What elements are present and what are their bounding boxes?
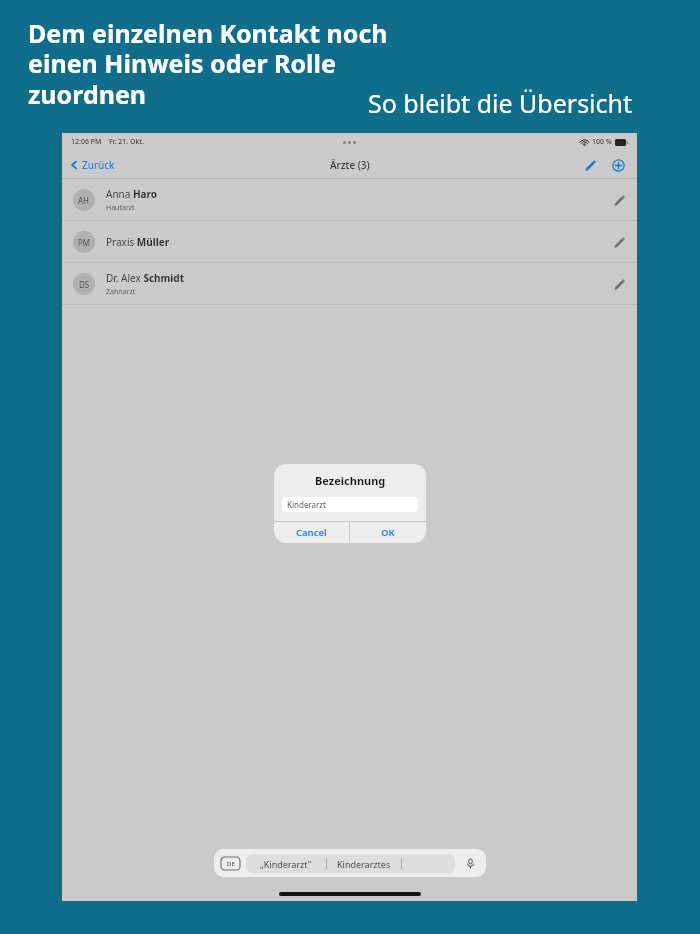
staticText: So bleibt die Übersicht bbox=[368, 86, 633, 120]
staticText: Fr. 21. Okt. bbox=[109, 137, 144, 147]
button[interactable]: Bearbeiten bbox=[580, 155, 600, 175]
staticText: AH bbox=[78, 195, 90, 206]
staticText: 100 % bbox=[592, 137, 612, 147]
button[interactable]: „Kinderarzt" bbox=[246, 854, 326, 873]
button[interactable]: Tastatursprache DE bbox=[221, 857, 240, 870]
button[interactable]: Kontakt bearbeiten bbox=[606, 271, 632, 297]
button[interactable]: Diktat bbox=[461, 854, 479, 872]
button[interactable]: OK bbox=[350, 522, 426, 543]
staticText: 12:06 PM bbox=[71, 137, 102, 147]
staticText: Zahnarzt bbox=[106, 287, 136, 297]
staticText: OK bbox=[381, 526, 395, 539]
staticText: Bezeichnung bbox=[315, 473, 386, 488]
button[interactable]: Kontakt bearbeiten bbox=[606, 229, 632, 255]
staticText: Dem einzelnen Kontakt noch einen Hinweis… bbox=[28, 16, 388, 112]
staticText: Kinderarzt bbox=[287, 499, 326, 510]
staticText: Dr. Alex Schmidt bbox=[106, 271, 184, 285]
staticText: PM bbox=[78, 237, 91, 248]
button[interactable]: Zurück bbox=[67, 155, 117, 175]
staticText: Hautarzt bbox=[106, 203, 135, 213]
button[interactable]: Kinderarzt bbox=[282, 497, 418, 512]
staticText: „Kinderarzt" bbox=[260, 858, 312, 870]
button[interactable]: Cancel bbox=[274, 522, 349, 543]
button[interactable]: AH bbox=[62, 179, 637, 220]
button[interactable]: DS bbox=[62, 263, 637, 304]
button[interactable]: PM bbox=[62, 221, 637, 262]
staticText: DE bbox=[227, 860, 235, 868]
button[interactable]: Kontakt hinzufügen bbox=[608, 155, 628, 175]
button[interactable]: Kinderarztes bbox=[327, 854, 401, 873]
staticText: Kinderarztes bbox=[337, 858, 391, 870]
staticText: DS bbox=[79, 279, 90, 290]
staticText: Ärzte (3) bbox=[330, 158, 370, 172]
staticText: Cancel bbox=[296, 526, 327, 539]
staticText: Zurück bbox=[82, 158, 115, 172]
button[interactable]: Kontakt bearbeiten bbox=[606, 187, 632, 213]
staticText: Praxis Müller bbox=[106, 235, 170, 249]
staticText: Anna Haro bbox=[106, 187, 158, 201]
